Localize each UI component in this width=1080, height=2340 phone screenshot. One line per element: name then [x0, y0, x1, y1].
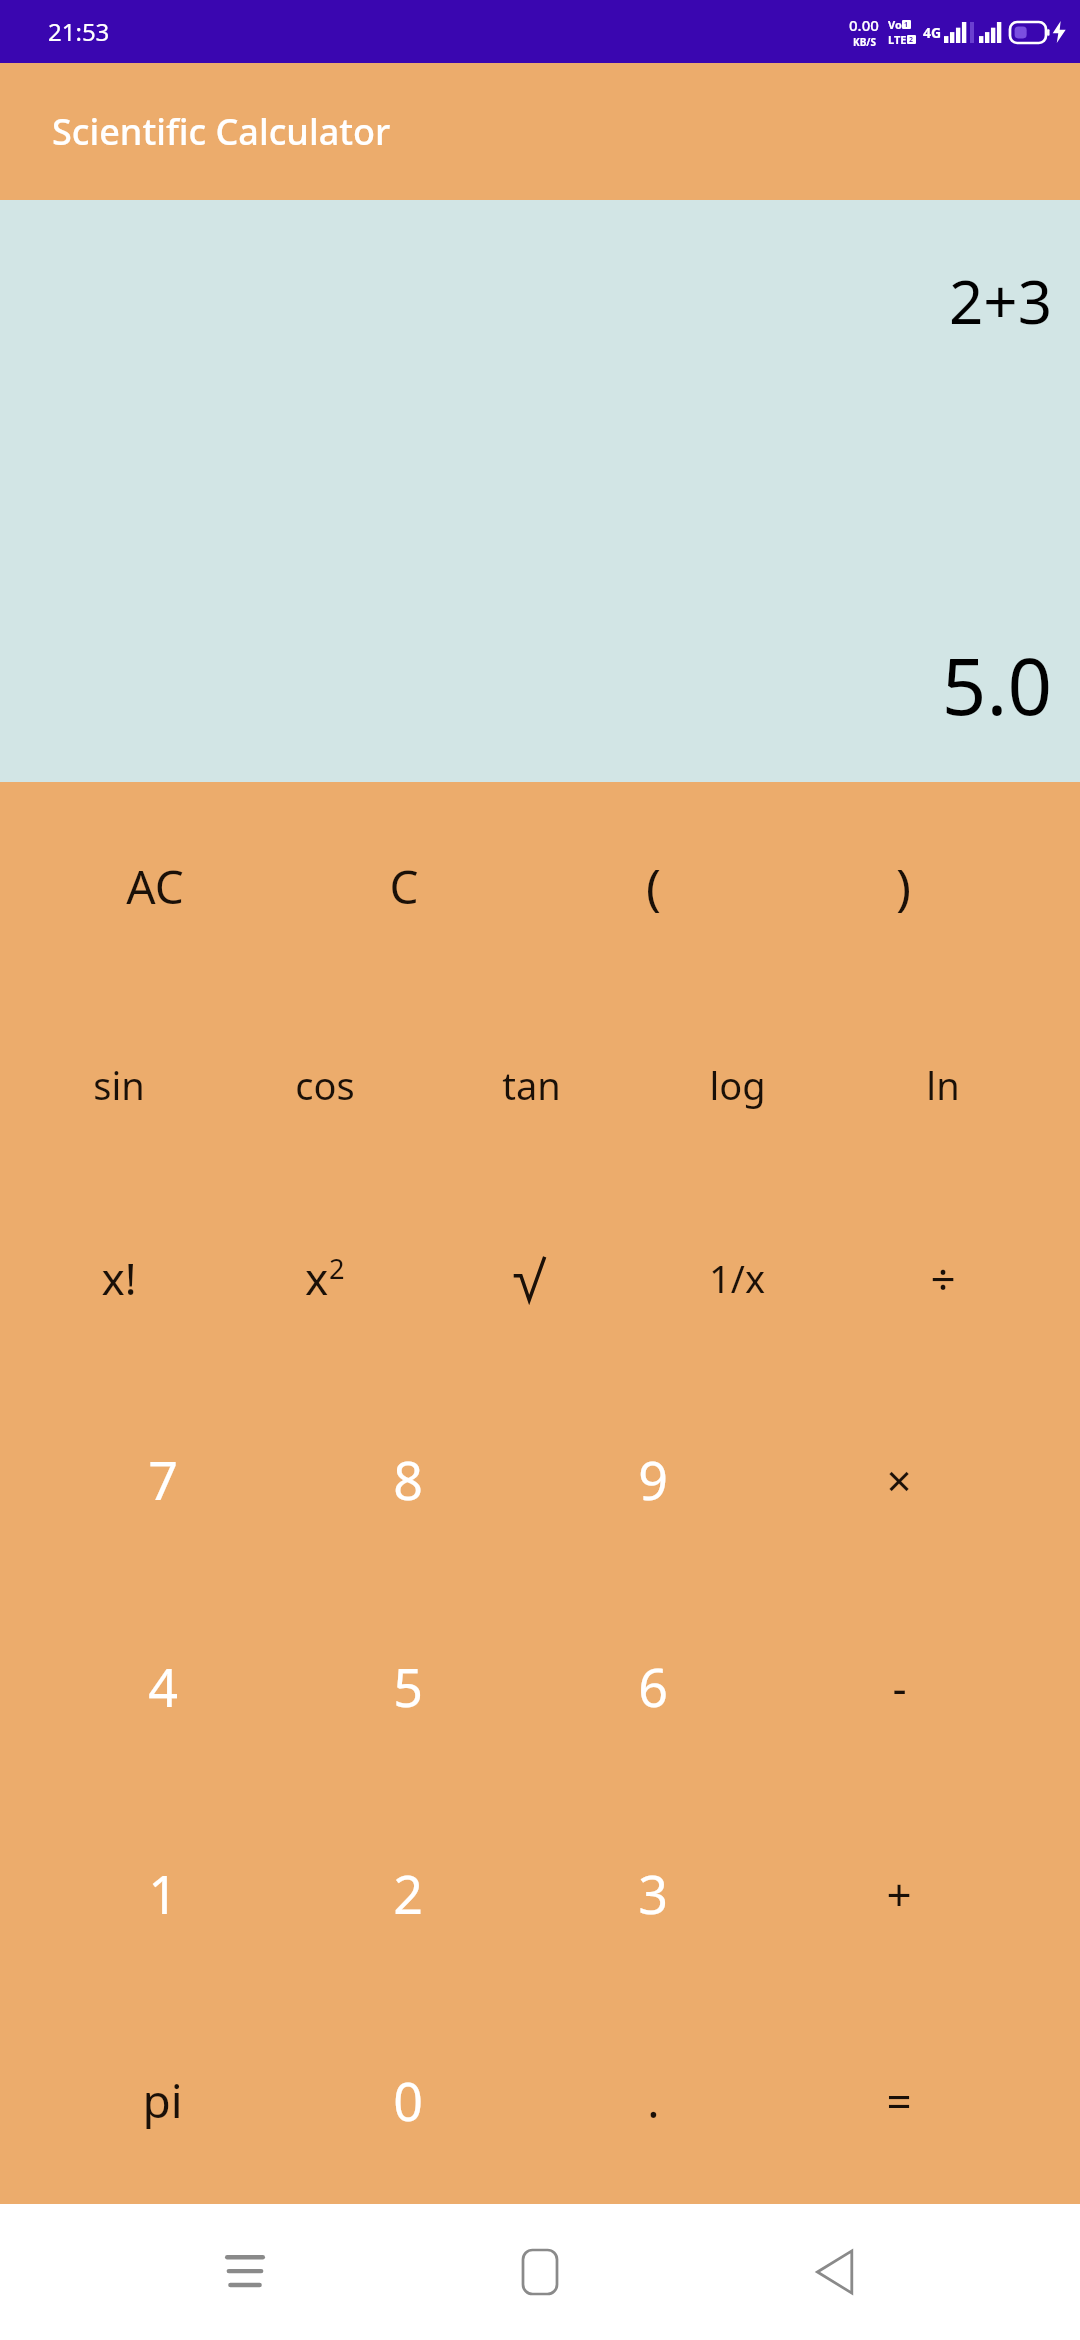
- button[interactable]: 5: [285, 1583, 530, 1790]
- button[interactable]: ln: [840, 990, 1046, 1179]
- staticText: 2+3: [949, 260, 1052, 342]
- button[interactable]: (: [528, 782, 778, 990]
- button[interactable]: ): [778, 782, 1028, 990]
- staticText: AC: [126, 855, 184, 918]
- staticText: 1/x: [709, 1252, 765, 1304]
- staticText: Vo: [888, 17, 902, 32]
- button[interactable]: .: [530, 1997, 776, 2204]
- staticText: 0.00: [849, 15, 879, 35]
- staticText: Scientific Calculator: [52, 107, 391, 156]
- other: Square root: [513, 1255, 549, 1301]
- button[interactable]: x: [222, 1179, 428, 1376]
- button[interactable]: -: [776, 1583, 1022, 1790]
- staticText: 2: [909, 35, 914, 44]
- staticText: ln: [926, 1059, 960, 1111]
- staticText: cos: [295, 1059, 355, 1111]
- staticText: 21:53: [48, 15, 110, 48]
- button[interactable]: C: [279, 782, 528, 990]
- staticText: 1: [904, 20, 909, 29]
- staticText: 4G: [923, 23, 942, 42]
- button[interactable]: 1/x: [634, 1179, 840, 1376]
- button[interactable]: 1: [40, 1790, 285, 1997]
- button[interactable]: +: [776, 1790, 1022, 1997]
- button[interactable]: Home: [490, 2222, 590, 2322]
- staticText: LTE: [888, 32, 907, 47]
- staticText: KB/S: [853, 35, 876, 49]
- staticText: 4: [148, 1651, 178, 1722]
- button[interactable]: Square root: [428, 1179, 634, 1376]
- staticText: =: [886, 2071, 912, 2131]
- staticText: ): [896, 852, 911, 920]
- staticText: 5.0: [941, 632, 1052, 738]
- staticText: 2: [393, 1858, 423, 1929]
- staticText: 3: [638, 1858, 668, 1929]
- button[interactable]: 7: [40, 1376, 285, 1583]
- button[interactable]: ×: [776, 1376, 1022, 1583]
- staticText: 9: [638, 1444, 668, 1515]
- staticText: tan: [502, 1059, 561, 1111]
- button[interactable]: Back: [785, 2222, 885, 2322]
- button[interactable]: 2: [285, 1790, 530, 1997]
- staticText: 7: [148, 1444, 178, 1515]
- staticText: ÷: [930, 1248, 956, 1308]
- button[interactable]: Recent apps: [195, 2222, 295, 2322]
- staticText: 1: [148, 1858, 178, 1929]
- staticText: sin: [93, 1059, 145, 1111]
- staticText: 0: [393, 2065, 423, 2136]
- button[interactable]: 3: [530, 1790, 776, 1997]
- button[interactable]: =: [776, 1997, 1022, 2204]
- button[interactable]: 4: [40, 1583, 285, 1790]
- staticText: x: [305, 1248, 329, 1308]
- button[interactable]: log: [634, 990, 840, 1179]
- button[interactable]: x!: [16, 1179, 222, 1376]
- button[interactable]: cos: [222, 990, 428, 1179]
- staticText: x!: [101, 1248, 137, 1308]
- button[interactable]: pi: [40, 1997, 285, 2204]
- button[interactable]: ÷: [840, 1179, 1046, 1376]
- button[interactable]: sin: [16, 990, 222, 1179]
- staticText: C: [389, 855, 419, 918]
- staticText: pi: [142, 2069, 183, 2132]
- button[interactable]: 8: [285, 1376, 530, 1583]
- staticText: 6: [638, 1651, 668, 1722]
- button[interactable]: tan: [428, 990, 634, 1179]
- button[interactable]: 9: [530, 1376, 776, 1583]
- staticText: 2: [329, 1250, 345, 1287]
- staticText: log: [709, 1059, 766, 1111]
- button[interactable]: 0: [285, 1997, 530, 2204]
- button[interactable]: AC: [30, 782, 279, 990]
- staticText: 5: [393, 1651, 423, 1722]
- staticText: 8: [393, 1444, 423, 1515]
- button[interactable]: 6: [530, 1583, 776, 1790]
- staticText: .: [647, 2069, 660, 2132]
- staticText: +: [886, 1864, 912, 1924]
- staticText: (: [646, 852, 661, 920]
- staticText: -: [892, 1657, 907, 1717]
- staticText: ×: [886, 1450, 912, 1510]
